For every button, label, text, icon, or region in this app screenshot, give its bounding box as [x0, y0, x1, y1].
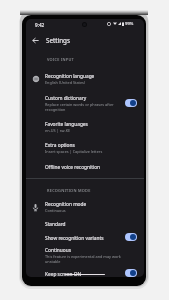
staticText: Settings	[46, 36, 70, 45]
staticText: Favorite languages	[45, 121, 88, 128]
staticText: Recognition mode	[45, 201, 87, 208]
staticText: Custom dictionary	[45, 95, 87, 102]
staticText: Continuous	[45, 208, 66, 213]
staticText: Standard	[45, 221, 66, 228]
staticText: 9:42	[35, 22, 45, 28]
button[interactable]: Show recognition variants	[26, 233, 144, 243]
staticText: Recognition language	[45, 73, 95, 80]
button[interactable]: Extra options	[26, 141, 144, 155]
staticText: en-US | sw-KE	[45, 128, 71, 133]
staticText: English (United States)	[45, 80, 86, 85]
staticText: Offline voice recognition	[45, 164, 101, 171]
button[interactable]: Custom dictionary	[26, 94, 144, 113]
button[interactable]: Continuous	[26, 246, 144, 265]
button[interactable]: Offline voice recognition	[26, 163, 144, 172]
button[interactable]: Favorite languages	[26, 120, 144, 134]
button[interactable]: Back	[27, 32, 43, 48]
button[interactable]: Recognition mode	[26, 200, 144, 214]
button[interactable]: Standard	[26, 220, 144, 229]
staticText: Show recognition variants	[45, 235, 104, 242]
staticText: Replace certain words or phrases after r…	[45, 102, 121, 112]
staticText: RECOGNITION MODE	[47, 188, 91, 193]
staticText: Extra options	[45, 142, 75, 149]
staticText: Keep screen ON	[45, 271, 82, 277]
staticText: Continuous	[45, 247, 71, 254]
staticText: 99%	[125, 21, 134, 26]
staticText: Insert spaces | Capitalize letters	[45, 149, 103, 154]
button[interactable]: Keep screen ON	[26, 269, 144, 277]
staticText: VOICE INPUT	[47, 57, 75, 62]
button[interactable]: Recognition language	[26, 72, 144, 86]
staticText: This feature is experimental and may wor…	[45, 254, 137, 264]
